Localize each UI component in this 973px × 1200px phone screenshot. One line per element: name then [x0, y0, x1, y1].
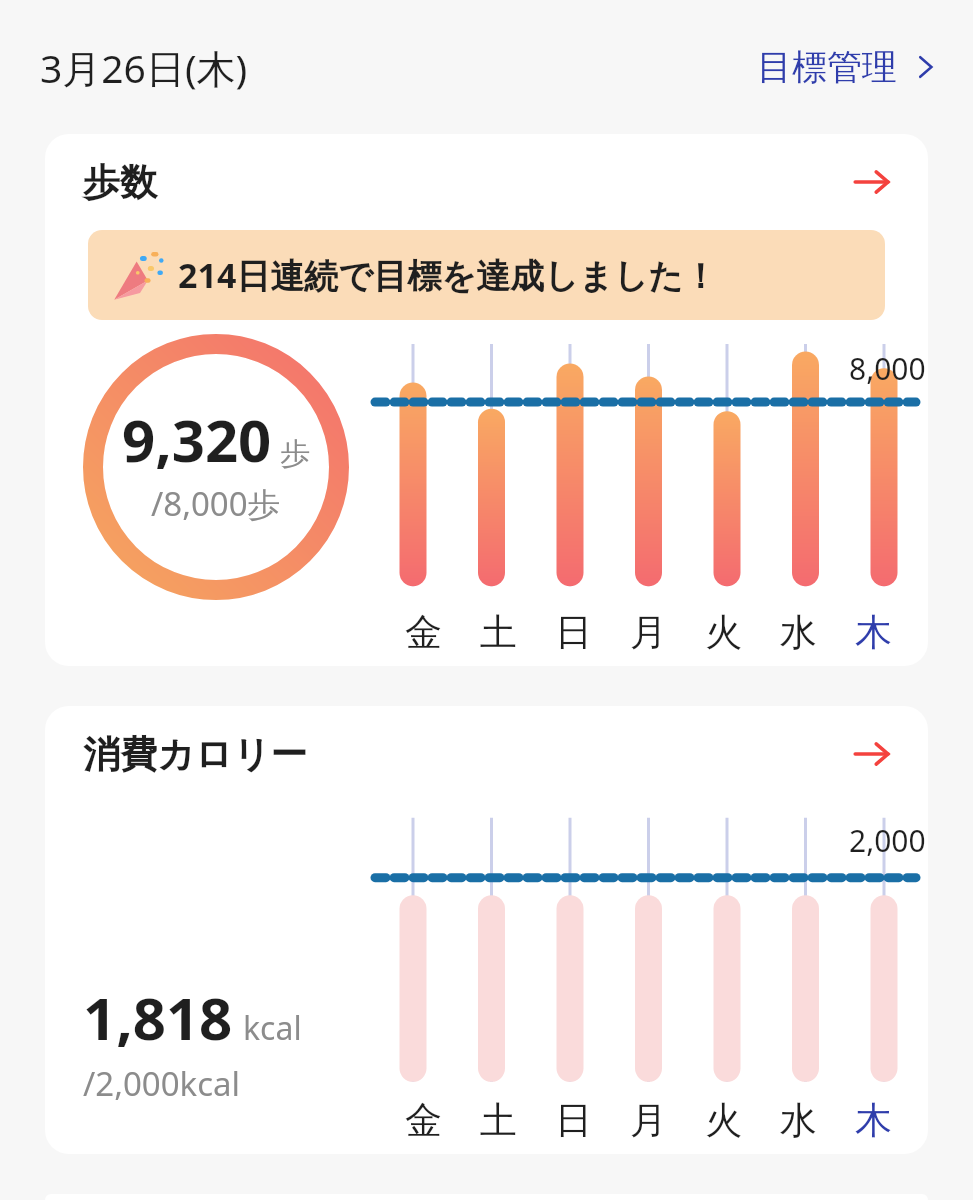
staticText: 土	[480, 1097, 517, 1144]
staticText: 土	[480, 609, 517, 656]
staticText: 9,320	[122, 400, 272, 479]
staticText: 3月26日(木)	[40, 41, 248, 94]
button[interactable]: 詳細を見る	[844, 726, 900, 782]
staticText: 8,000	[849, 348, 926, 389]
staticText: 火	[705, 609, 742, 656]
staticText: 木	[855, 1097, 892, 1144]
staticText: 水	[780, 609, 817, 656]
staticText: 目標管理	[757, 45, 897, 89]
staticText: /2,000kcal	[83, 1061, 241, 1106]
staticText: 木	[855, 609, 892, 656]
staticText: /8,000歩	[151, 481, 281, 526]
button[interactable]: 歩数	[45, 134, 928, 666]
staticText: 2,000	[849, 820, 926, 861]
staticText: 月	[630, 609, 667, 656]
button[interactable]: 目標管理	[757, 45, 945, 89]
staticText: 水	[780, 1097, 817, 1144]
staticText: 消費カロリー	[83, 731, 308, 778]
button[interactable]: 消費カロリー	[45, 706, 928, 1154]
staticText: 日	[555, 609, 592, 656]
staticText: 1,818	[83, 978, 233, 1057]
staticText: 火	[705, 1097, 742, 1144]
staticText: 金	[405, 609, 442, 656]
button[interactable]: 詳細を見る	[844, 154, 900, 210]
staticText: 月	[630, 1097, 667, 1144]
staticText: kcal	[243, 1006, 302, 1050]
staticText: 214日連続で目標を達成しました！	[178, 252, 718, 298]
staticText: 金	[405, 1097, 442, 1144]
staticText: 歩	[280, 435, 310, 473]
staticText: 歩数	[83, 159, 157, 206]
staticText: 日	[555, 1097, 592, 1144]
